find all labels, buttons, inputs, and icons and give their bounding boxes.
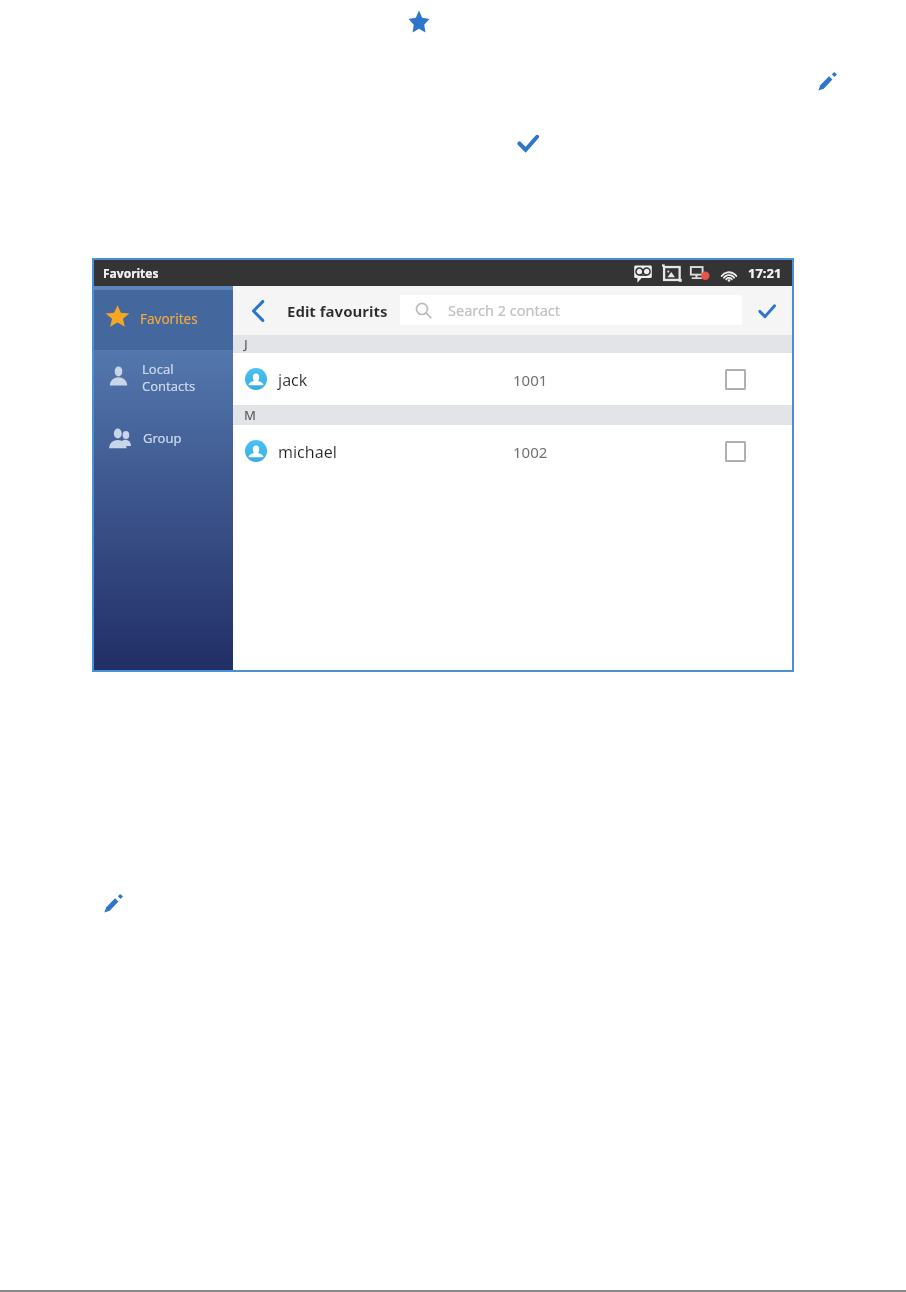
button[interactable]: michael	[233, 425, 792, 477]
staticText: M	[244, 406, 256, 424]
staticText: Group	[143, 429, 182, 447]
button[interactable]: Group	[94, 418, 233, 456]
button[interactable]: Search 2 contact	[400, 295, 742, 325]
button[interactable]: Favorites	[94, 290, 233, 350]
staticText: Favorites	[103, 265, 159, 281]
button[interactable]: Back	[242, 286, 274, 335]
staticText: 1001	[513, 370, 548, 390]
staticText: Search 2 contact	[448, 300, 560, 320]
staticText: J	[244, 335, 248, 353]
staticText: jack	[278, 369, 308, 391]
staticText: michael	[278, 441, 337, 463]
button[interactable]: jack	[233, 353, 792, 405]
staticText: Local Contacts	[142, 360, 196, 395]
staticText: Favorites	[140, 310, 198, 328]
button[interactable]: Local Contacts	[94, 351, 233, 401]
button[interactable]: Select jack	[725, 369, 746, 390]
staticText: 1002	[513, 442, 548, 462]
button[interactable]: Confirm	[747, 286, 787, 335]
staticText: 17:21	[748, 264, 782, 282]
staticText: Edit favourits	[287, 301, 388, 321]
button[interactable]: Select michael	[725, 441, 746, 462]
